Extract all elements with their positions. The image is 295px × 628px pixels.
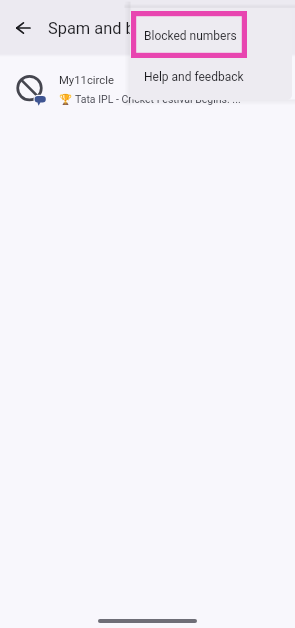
staticText: Spam and blocked	[48, 19, 183, 38]
button[interactable]: Help and feedback	[130, 56, 292, 97]
button[interactable]: Back	[1, 6, 45, 50]
staticText: Help and feedback	[144, 70, 244, 84]
staticText: Blocked numbers	[144, 29, 237, 43]
staticText: My11circle	[59, 74, 114, 87]
staticText: Tata IPL - Cricket Festival Begins. ...	[75, 93, 241, 105]
button[interactable]: Blocked numbers	[130, 15, 292, 56]
staticText: 🏆	[59, 93, 73, 105]
button[interactable]: My11circle	[0, 62, 295, 110]
